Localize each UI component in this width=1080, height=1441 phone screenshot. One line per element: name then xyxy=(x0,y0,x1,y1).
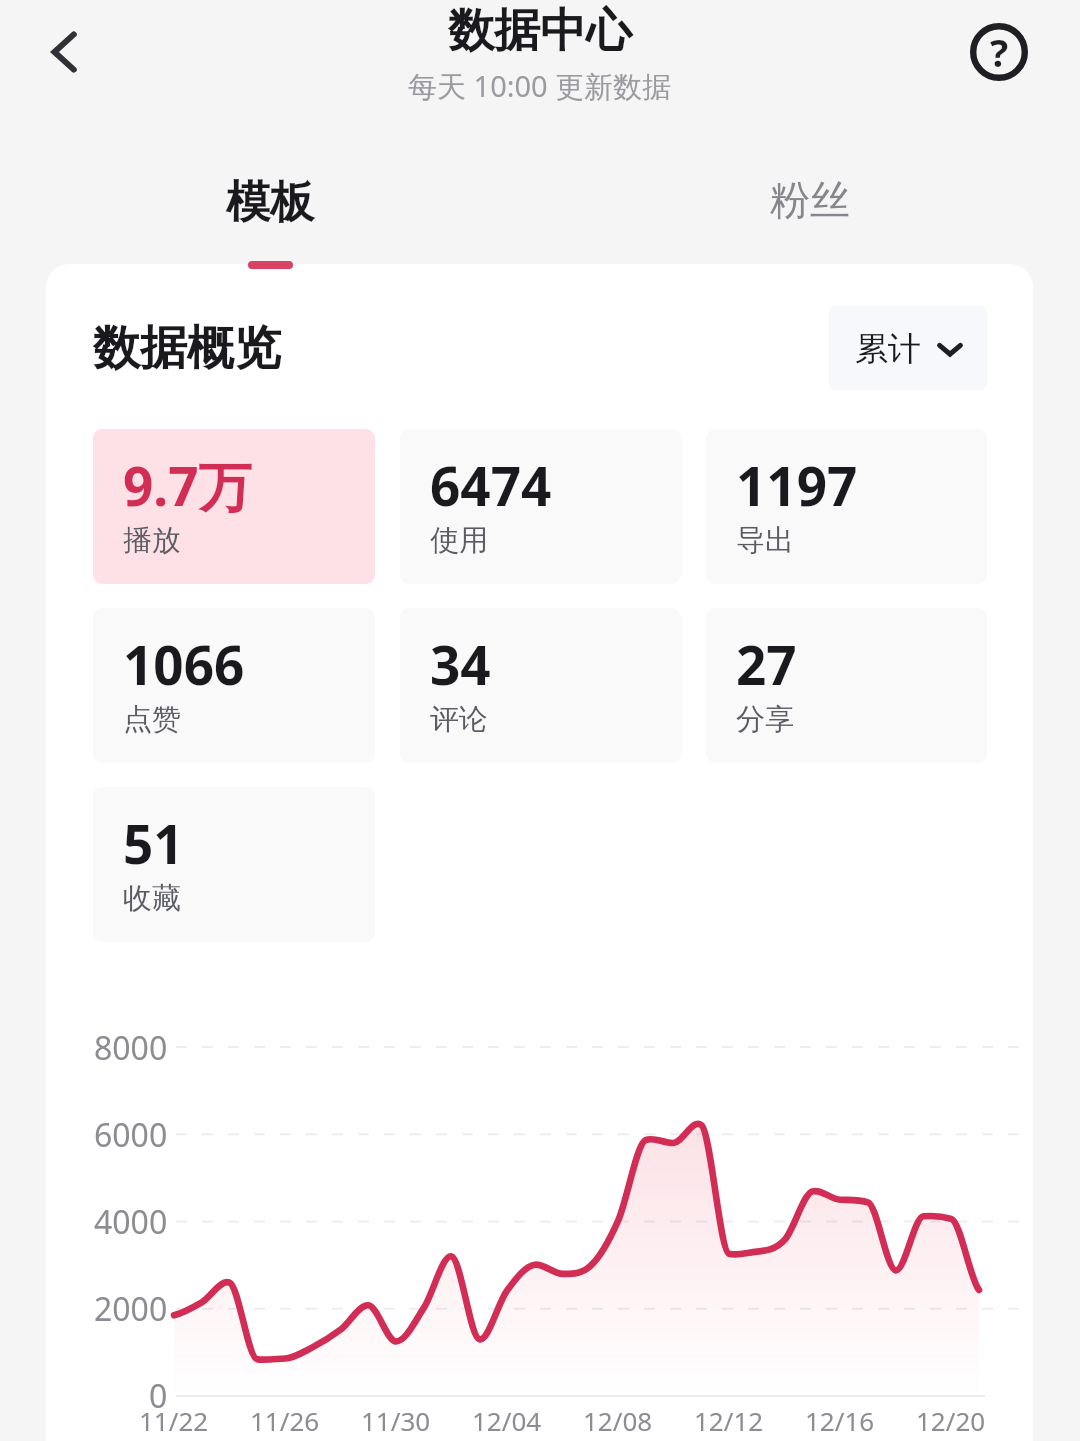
staticText: 播放 xyxy=(123,522,181,559)
button[interactable]: 模板 xyxy=(180,175,360,285)
staticText: 数据中心 xyxy=(448,2,632,60)
staticText: 收藏 xyxy=(123,880,181,917)
button[interactable]: 34 xyxy=(400,608,681,763)
staticText: 导出 xyxy=(736,522,794,559)
staticText: 12/20 xyxy=(916,1403,986,1438)
staticText: 6000 xyxy=(94,1113,168,1157)
button[interactable]: Back xyxy=(25,12,105,92)
staticText: 51 xyxy=(123,807,184,879)
button[interactable]: 51 xyxy=(93,787,375,942)
staticText: 6474 xyxy=(430,449,552,521)
staticText: 粉丝 xyxy=(770,175,850,225)
staticText: 11/22 xyxy=(139,1403,209,1438)
staticText: 12/04 xyxy=(472,1403,542,1438)
staticText: 2000 xyxy=(94,1287,168,1331)
staticText: 点赞 xyxy=(123,701,181,738)
staticText: 0 xyxy=(149,1374,168,1418)
button[interactable]: 1197 xyxy=(706,429,987,584)
staticText: 8000 xyxy=(94,1026,168,1070)
staticText: 使用 xyxy=(430,522,488,559)
button[interactable]: Help xyxy=(961,14,1037,90)
button[interactable]: 累计 xyxy=(829,306,987,390)
staticText: 12/08 xyxy=(583,1403,653,1438)
button[interactable]: 1066 xyxy=(93,608,375,763)
staticText: ? xyxy=(990,26,1009,78)
staticText: 模板 xyxy=(226,175,314,230)
staticText: 11/30 xyxy=(361,1403,431,1438)
staticText: 11/26 xyxy=(250,1403,320,1438)
staticText: 27 xyxy=(736,628,797,700)
staticText: 34 xyxy=(430,628,491,700)
staticText: 12/16 xyxy=(805,1403,875,1438)
staticText: 4000 xyxy=(94,1200,168,1244)
staticText: 每天 10:00 更新数据 xyxy=(408,66,672,106)
staticText: 数据概览 xyxy=(93,319,281,378)
button[interactable]: 27 xyxy=(706,608,987,763)
staticText: 12/12 xyxy=(694,1403,764,1438)
staticText: 评论 xyxy=(430,701,488,738)
staticText: 分享 xyxy=(736,701,794,738)
staticText: 9.7万 xyxy=(123,449,252,521)
button[interactable]: 6474 xyxy=(400,429,681,584)
staticText: 1066 xyxy=(123,628,245,700)
staticText: 1197 xyxy=(736,449,858,521)
button[interactable]: 粉丝 xyxy=(720,175,900,285)
staticText: 累计 xyxy=(855,328,921,370)
button[interactable]: 9.7万 xyxy=(93,429,375,584)
